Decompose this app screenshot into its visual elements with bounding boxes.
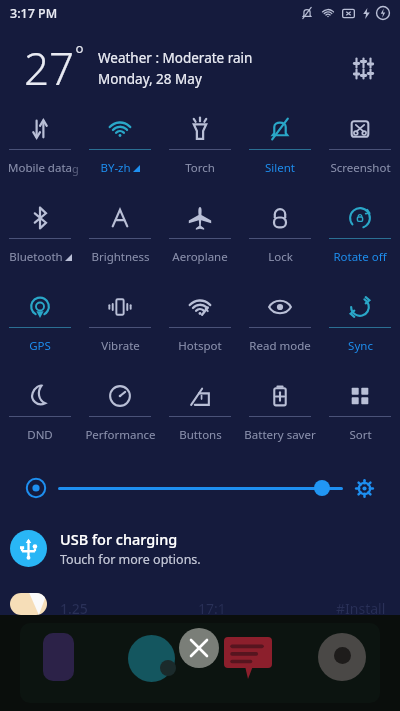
staticText: Battery saver <box>244 427 316 443</box>
staticText: ° <box>75 40 84 69</box>
button[interactable]: Rotate off <box>320 199 400 288</box>
button[interactable]: USB for charging <box>0 522 400 574</box>
button[interactable]: Torch <box>160 110 240 199</box>
staticText: Lock <box>268 249 293 265</box>
staticText: Monday, 28 May <box>98 70 202 88</box>
button[interactable]: Brightness low <box>26 478 46 498</box>
staticText: g <box>72 161 79 176</box>
button[interactable]: Sync <box>320 288 400 377</box>
button[interactable]: 1.25 <box>0 593 400 615</box>
staticText: Touch for more options. <box>60 551 201 568</box>
staticText: Aeroplane <box>172 249 228 265</box>
staticText: Brightness <box>91 249 150 265</box>
staticText: DND <box>27 427 53 443</box>
staticText: Buttons <box>179 427 222 443</box>
staticText: Rotate off <box>333 249 387 265</box>
button[interactable]: Close <box>179 628 219 668</box>
staticText: Bluetooth <box>9 249 63 265</box>
staticText: Read mode <box>249 338 311 354</box>
staticText: 27 <box>24 38 75 98</box>
button[interactable]: Settings <box>342 47 384 89</box>
staticText: Mobile data <box>8 160 72 176</box>
button[interactable]: Performance <box>80 377 160 466</box>
button[interactable]: Vibrate <box>80 288 160 377</box>
staticText: Performance <box>85 427 156 443</box>
staticText: Sort <box>349 427 372 443</box>
staticText: Hotspot <box>178 338 222 354</box>
button[interactable]: Screenshot <box>320 110 400 199</box>
button[interactable]: Mobile data <box>0 110 80 199</box>
button[interactable]: Hotspot <box>160 288 240 377</box>
button[interactable]: Auto brightness <box>355 479 374 498</box>
staticText: Weather : Moderate rain <box>98 49 253 67</box>
button[interactable]: Read mode <box>240 288 320 377</box>
staticText: 3:17 PM <box>10 5 58 22</box>
button[interactable]: g <box>80 110 160 199</box>
button[interactable]: GPS <box>0 288 80 377</box>
staticText: 1.25 <box>60 599 88 615</box>
staticText: BY-zh <box>100 160 131 176</box>
button[interactable]: Buttons <box>160 377 240 466</box>
staticText: Torch <box>185 160 215 176</box>
button[interactable]: DND <box>0 377 80 466</box>
button[interactable]: Sort <box>320 377 400 466</box>
staticText: Screenshot <box>330 160 391 176</box>
button[interactable]: Silent <box>240 110 320 199</box>
staticText: GPS <box>29 338 51 354</box>
staticText: Silent <box>265 160 295 176</box>
staticText: 17:1 <box>198 599 226 615</box>
staticText: Vibrate <box>101 338 140 354</box>
button[interactable] <box>58 477 343 499</box>
button[interactable]: Lock <box>240 199 320 288</box>
button[interactable]: Bluetooth <box>0 199 80 288</box>
staticText: Sync <box>348 338 373 354</box>
button[interactable]: Brightness <box>80 199 160 288</box>
staticText: #Install <box>336 599 386 615</box>
button[interactable]: Battery saver <box>240 377 320 466</box>
button[interactable]: Aeroplane <box>160 199 240 288</box>
staticText: USB for charging <box>60 529 178 549</box>
